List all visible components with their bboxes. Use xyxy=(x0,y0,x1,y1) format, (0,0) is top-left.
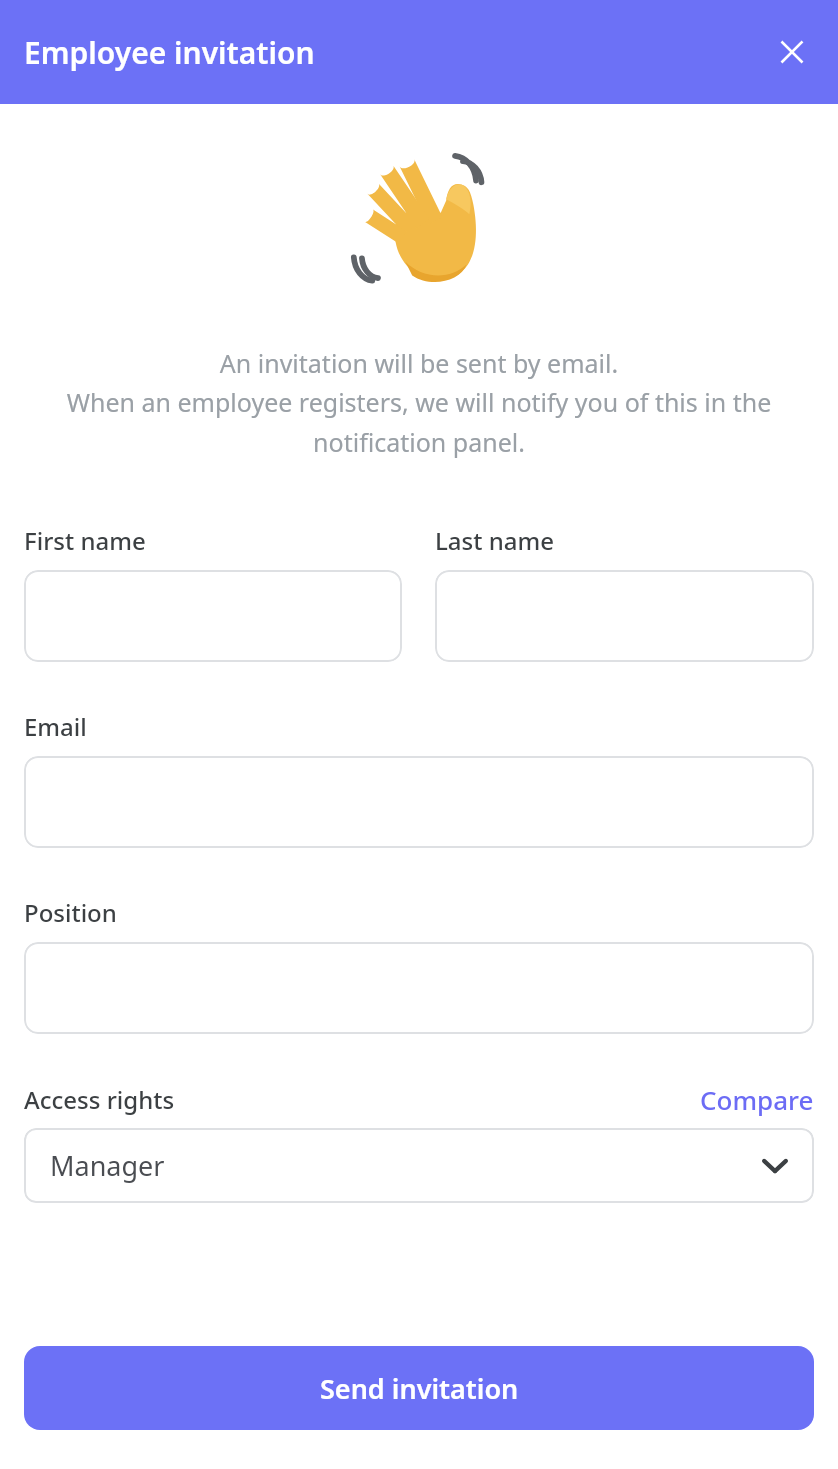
button[interactable] xyxy=(24,756,814,848)
button[interactable] xyxy=(435,570,814,662)
staticText: Access rights xyxy=(24,1083,175,1116)
staticText: Last name xyxy=(435,524,554,557)
staticText: An invitation will be sent by email. Whe… xyxy=(26,346,812,460)
button[interactable]: Manager xyxy=(24,1128,814,1203)
button[interactable] xyxy=(24,570,402,662)
staticText: Position xyxy=(24,896,117,929)
staticText: Send invitation xyxy=(320,1370,519,1407)
button[interactable]: Close xyxy=(766,26,818,78)
staticText: Employee invitation xyxy=(24,32,315,73)
staticText: Manager xyxy=(50,1147,165,1184)
button[interactable] xyxy=(24,942,814,1034)
staticText: First name xyxy=(24,524,146,557)
staticText: Email xyxy=(24,710,87,743)
staticText: Compare xyxy=(700,1082,814,1117)
button[interactable]: Compare xyxy=(700,1082,814,1117)
button[interactable]: Send invitation xyxy=(24,1346,814,1430)
